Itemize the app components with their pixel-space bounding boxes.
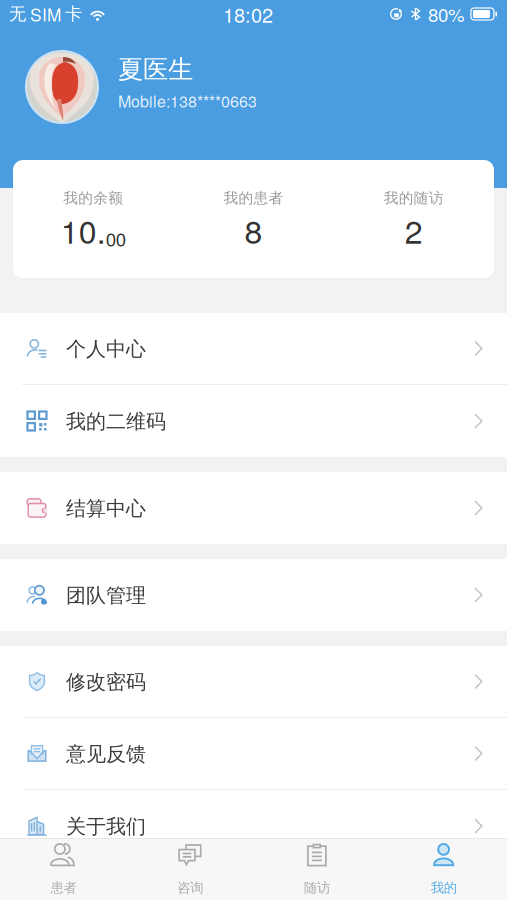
staticText: 我的随访 [384, 189, 444, 207]
staticText: 我的患者 [223, 189, 283, 207]
staticText: Mobile:138****0663 [118, 89, 257, 112]
staticText: 00 [106, 225, 126, 252]
staticText: 患者 [50, 880, 76, 896]
button[interactable]: 随访 [253, 839, 380, 900]
button[interactable]: 团队管理 [0, 559, 507, 631]
staticText: 18:02 [223, 0, 273, 28]
staticText: 夏医生 [118, 54, 193, 85]
staticText: 我的二维码 [66, 409, 166, 434]
staticText: 无 [9, 3, 26, 25]
button[interactable]: 个人中心 [0, 313, 507, 385]
staticText: 意见反馈 [66, 742, 146, 766]
staticText: 团队管理 [66, 583, 146, 608]
button[interactable]: 关于我们 [0, 790, 507, 862]
staticText: 80% [428, 1, 465, 27]
button[interactable]: 咨询 [127, 839, 254, 900]
staticText: 修改密码 [66, 670, 146, 694]
button[interactable]: 修改密码 [0, 646, 507, 718]
staticText: 我的余额 [63, 189, 123, 207]
staticText: 关于我们 [66, 814, 146, 839]
staticText: 卡 [65, 3, 82, 25]
button[interactable]: 患者 [0, 839, 127, 900]
button[interactable]: 我的二维码 [0, 385, 507, 457]
staticText: 结算中心 [66, 496, 146, 521]
staticText: SIM [30, 2, 61, 26]
staticText: 我的 [431, 880, 457, 896]
staticText: 8 [244, 207, 262, 253]
staticText: 咨询 [177, 880, 203, 896]
staticText: 个人中心 [66, 337, 146, 361]
staticText: 随访 [304, 880, 330, 896]
staticText: 10. [61, 207, 106, 253]
button[interactable]: 结算中心 [0, 472, 507, 544]
button[interactable]: 我的 [380, 839, 507, 900]
staticText: 2 [405, 207, 423, 253]
button[interactable]: 意见反馈 [0, 718, 507, 790]
